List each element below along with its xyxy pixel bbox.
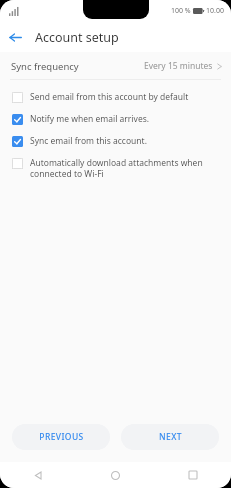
button[interactable]: Sync email from this account. [0, 130, 231, 152]
staticText: Automatically download attachments when … [30, 157, 219, 179]
button[interactable]: Send email from this account by default [0, 86, 231, 108]
button[interactable]: Home [77, 462, 154, 488]
staticText: 10.00 [206, 6, 224, 16]
staticText: Sync email from this account. [30, 135, 147, 147]
button[interactable]: Automatically download attachments when … [0, 152, 231, 184]
button[interactable]: PREVIOUS [12, 424, 110, 450]
button[interactable]: Back [0, 22, 30, 52]
button[interactable]: Notify me when email arrives. [0, 108, 231, 130]
button[interactable]: Recents [154, 462, 231, 488]
staticText: Every 15 minutes [144, 60, 213, 72]
staticText: NEXT [159, 431, 182, 443]
staticText: Sync frequency [11, 60, 79, 73]
button[interactable]: NEXT [121, 424, 219, 450]
staticText: Notify me when email arrives. [30, 113, 150, 125]
button[interactable]: Back [0, 462, 77, 488]
staticText: 100 % [171, 6, 191, 16]
staticText: Account setup [35, 29, 119, 46]
button[interactable]: Sync frequency [0, 53, 231, 79]
staticText: PREVIOUS [39, 431, 84, 443]
staticText: Send email from this account by default [30, 91, 189, 103]
